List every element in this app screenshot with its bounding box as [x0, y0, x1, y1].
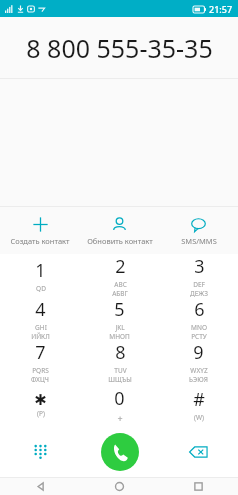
staticText: 8 800 555-35-35	[26, 31, 213, 65]
staticText: 21:57	[209, 3, 233, 15]
staticText: 1	[35, 258, 46, 283]
staticText: GHI	[35, 323, 47, 332]
staticText: SMS/MMS	[181, 236, 217, 246]
staticText: ФХЦЧ	[31, 375, 49, 383]
staticText: ЬЭЮЯ	[189, 375, 208, 383]
staticText: MNO	[191, 323, 207, 332]
button[interactable]: Backspace	[159, 426, 238, 477]
staticText: ДЕЖЗ	[190, 289, 208, 297]
staticText: JKL	[115, 323, 125, 332]
staticText: 0	[114, 386, 125, 411]
button[interactable]: 2	[80, 254, 159, 297]
button[interactable]: 8	[80, 340, 159, 383]
staticText: PQRS	[32, 366, 49, 375]
staticText: TUV	[114, 366, 127, 375]
button[interactable]: ✱	[0, 383, 80, 426]
staticText: 7	[35, 340, 46, 365]
button[interactable]: Recent apps	[159, 477, 238, 495]
staticText: 6	[194, 297, 205, 322]
staticText: (P)	[37, 409, 45, 418]
button[interactable]: 3	[159, 254, 238, 297]
staticText: ШЩЪЫ	[108, 375, 132, 383]
button[interactable]: 9	[159, 340, 238, 383]
staticText: 4	[35, 297, 46, 322]
staticText: ABC	[114, 280, 127, 289]
staticText: МНОП	[109, 332, 130, 340]
button[interactable]: 4	[0, 297, 80, 340]
button[interactable]: 7	[0, 340, 80, 383]
button[interactable]: 6	[159, 297, 238, 340]
button[interactable]: SMS/MMS	[159, 212, 238, 250]
button[interactable]: Обновить контакт	[80, 212, 159, 250]
staticText: 5	[114, 297, 125, 322]
staticText: QD	[36, 284, 46, 293]
staticText: DEF	[193, 280, 205, 289]
button[interactable]: Создать контакт	[0, 212, 80, 250]
button[interactable]: Back	[0, 477, 80, 495]
button[interactable]: 5	[80, 297, 159, 340]
button[interactable]: 0	[80, 383, 159, 426]
staticText: ✱	[34, 391, 47, 408]
button[interactable]: Home	[80, 477, 159, 495]
staticText: РСТУ	[191, 332, 207, 340]
staticText: WXYZ	[190, 366, 208, 375]
staticText: 9	[193, 340, 204, 365]
button[interactable]: Show dialpad	[0, 426, 80, 477]
staticText: +	[117, 412, 123, 424]
staticText: Создать контакт	[10, 236, 70, 246]
staticText: (W)	[194, 413, 204, 422]
staticText: ИЙКЛ	[31, 332, 50, 340]
button[interactable]: #	[159, 383, 238, 426]
staticText: Обновить контакт	[87, 236, 153, 246]
staticText: 3	[194, 254, 205, 279]
button[interactable]: 1	[0, 254, 80, 297]
button[interactable]: Call	[101, 433, 139, 471]
staticText: 8	[115, 340, 126, 365]
staticText: АБВГ	[112, 289, 128, 297]
staticText: #	[193, 387, 205, 412]
staticText: 2	[115, 254, 126, 279]
